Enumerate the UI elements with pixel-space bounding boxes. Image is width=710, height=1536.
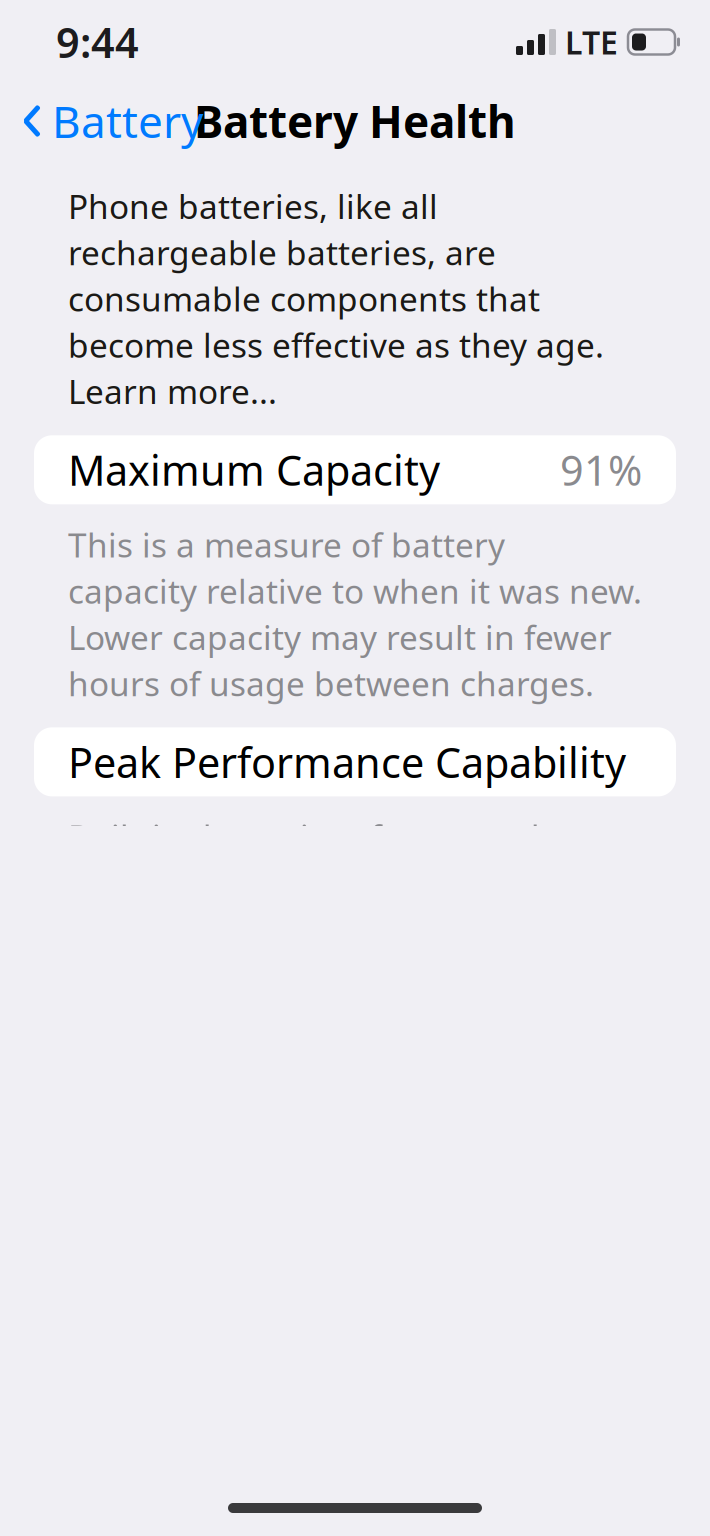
staticText: Battery Health [194,92,516,150]
staticText: Peak Performance Capability [68,734,626,789]
button[interactable]: Peak Performance Capability [34,727,676,796]
staticText: Maximum Capacity [68,442,440,497]
button[interactable]: Battery [0,84,203,158]
staticText: LTE [565,21,618,63]
staticText: Battery [52,92,203,150]
staticText: 91% [560,442,642,497]
staticText: This is a measure of battery capacity re… [68,522,642,705]
staticText: Phone batteries, like all rechargeable b… [68,184,604,413]
staticText: 9:44 [56,15,139,69]
button[interactable]: Maximum Capacity [34,435,676,504]
